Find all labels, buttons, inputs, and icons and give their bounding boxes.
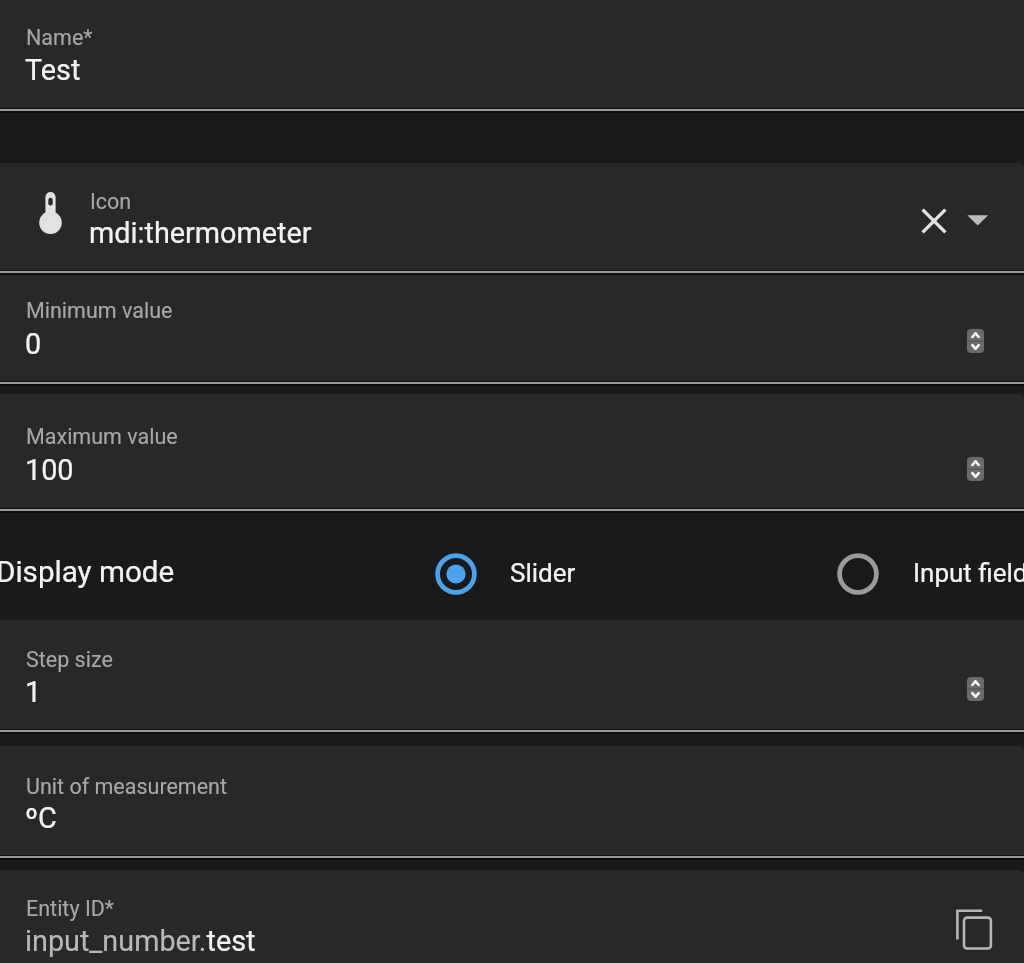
button[interactable]: Increase or decrease value	[958, 451, 992, 489]
button[interactable]: Entity ID*	[0, 870, 1024, 963]
staticText: ºC	[25, 801, 57, 835]
staticText: Slider	[510, 558, 576, 588]
staticText: Test	[25, 53, 81, 87]
button[interactable]: Icon	[0, 163, 1024, 271]
staticText: Entity ID*	[26, 896, 115, 921]
staticText: Input field	[913, 558, 1024, 588]
staticText: mdi:thermometer	[89, 216, 312, 250]
button[interactable]: Maximum value	[0, 394, 1024, 509]
button[interactable]: Copy entity ID	[949, 902, 1001, 954]
button[interactable]: Name*	[0, 0, 1024, 109]
staticText: 100	[25, 453, 74, 487]
staticText: 0	[25, 327, 42, 361]
staticText: Minimum value	[26, 298, 173, 323]
staticText: Step size	[26, 647, 113, 672]
button[interactable]: Unit of measurement	[0, 746, 1024, 856]
button[interactable]: Increase or decrease value	[958, 671, 992, 709]
staticText: input_number.test	[25, 924, 256, 958]
button[interactable]: Slider	[428, 550, 628, 596]
staticText: Display mode	[0, 555, 175, 590]
button[interactable]: Open icon picker	[956, 199, 1000, 243]
staticText: 1	[25, 675, 42, 709]
button[interactable]: Step size	[0, 620, 1024, 730]
staticText: Icon	[90, 189, 132, 214]
staticText: Maximum value	[26, 424, 178, 449]
button[interactable]: Clear icon	[912, 199, 956, 243]
button[interactable]: Display mode	[0, 555, 175, 590]
button[interactable]: Input field	[830, 550, 1024, 596]
button[interactable]: Increase or decrease value	[958, 323, 992, 361]
staticText: Name*	[26, 25, 93, 50]
staticText: Unit of measurement	[26, 774, 228, 799]
button[interactable]: Minimum value	[0, 273, 1024, 382]
